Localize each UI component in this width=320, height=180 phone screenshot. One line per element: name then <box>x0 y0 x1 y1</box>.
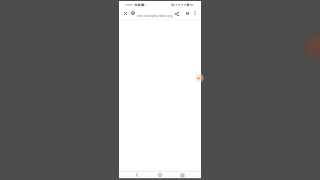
button[interactable]: site.exampleurlsite.org <box>129 8 172 18</box>
button[interactable]: Home <box>156 171 164 179</box>
staticText: site.exampleurlsite.org <box>137 13 173 17</box>
button[interactable]: Recent apps <box>178 171 186 179</box>
button[interactable]: More options <box>190 8 200 18</box>
button[interactable]: Saved pages <box>182 8 192 18</box>
button[interactable]: Close <box>120 8 130 18</box>
button[interactable]: Share <box>172 9 182 19</box>
button[interactable]: Back <box>133 171 141 179</box>
